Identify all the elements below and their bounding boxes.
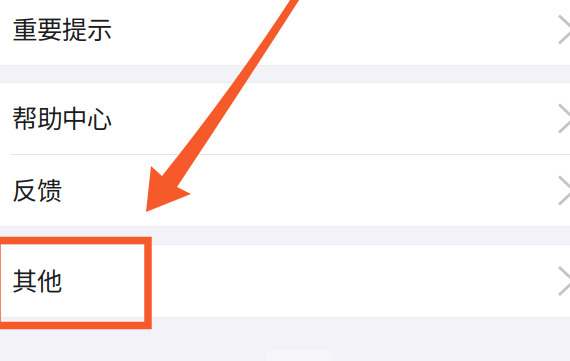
staticText: 反馈: [12, 171, 62, 207]
button[interactable]: 帮助中心: [0, 83, 570, 154]
staticText: 其他: [12, 261, 62, 298]
staticText: 重要提示: [12, 10, 112, 46]
button[interactable]: 重要提示: [0, 0, 570, 65]
button[interactable]: 其他: [0, 245, 570, 317]
button[interactable]: 反馈: [0, 155, 570, 226]
staticText: 帮助中心: [12, 99, 112, 135]
